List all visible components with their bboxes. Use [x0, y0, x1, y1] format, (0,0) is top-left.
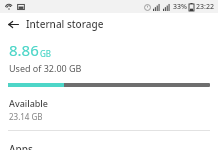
- staticText: 23.14 GB: [9, 111, 43, 122]
- staticText: 8.86: [9, 40, 39, 60]
- staticText: Internal storage: [26, 17, 104, 31]
- button[interactable]: Available: [0, 97, 218, 122]
- staticText: 23:22: [196, 2, 214, 12]
- button[interactable]: Back: [0, 13, 26, 35]
- staticText: Available: [9, 97, 48, 109]
- button[interactable]: Apps: [0, 142, 218, 150]
- staticText: Used of 32.00 GB: [9, 62, 82, 74]
- staticText: Apps: [9, 142, 33, 150]
- staticText: 33%: [173, 2, 187, 12]
- staticText: GB: [40, 48, 52, 59]
